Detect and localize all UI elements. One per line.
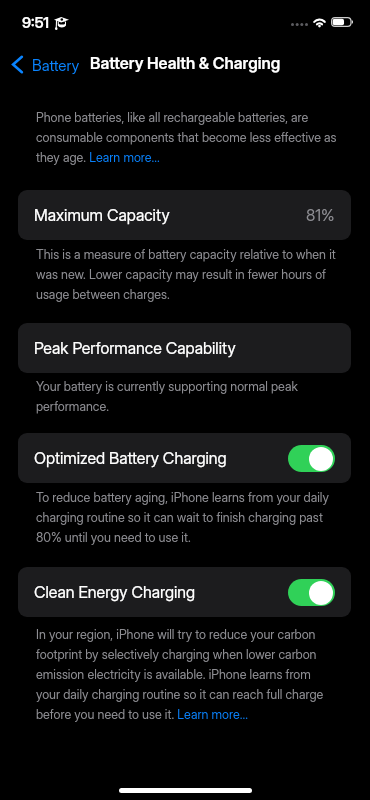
- staticText: This is a measure of battery capacity re…: [36, 243, 337, 303]
- staticText: Optimized Battery Charging: [34, 448, 227, 468]
- staticText: Peak Performance Capability: [34, 338, 236, 358]
- staticText: Battery Health & Charging: [90, 53, 281, 73]
- button[interactable]: Toggle Clean Energy Charging: [288, 579, 335, 606]
- staticText: To reduce battery aging, iPhone learns f…: [36, 486, 337, 546]
- button[interactable]: Optimized Battery Charging: [18, 433, 351, 483]
- button[interactable]: Peak Performance Capability: [18, 323, 351, 373]
- staticText: Phone batteries, like all rechargeable b…: [36, 106, 337, 166]
- button[interactable]: Battery: [0, 42, 88, 86]
- staticText: 81%: [306, 205, 335, 225]
- button[interactable]: Clean Energy Charging: [18, 567, 351, 617]
- staticText: In your region, iPhone will try to reduc…: [36, 623, 337, 723]
- staticText: Battery: [32, 56, 80, 74]
- button[interactable]: Toggle Optimized Battery Charging: [288, 445, 335, 472]
- staticText: Clean Energy Charging: [34, 582, 196, 602]
- staticText: Maximum Capacity: [34, 205, 170, 225]
- staticText: 9:51: [22, 13, 49, 31]
- button[interactable]: Maximum Capacity: [18, 190, 351, 240]
- staticText: Your battery is currently supporting nor…: [36, 375, 337, 415]
